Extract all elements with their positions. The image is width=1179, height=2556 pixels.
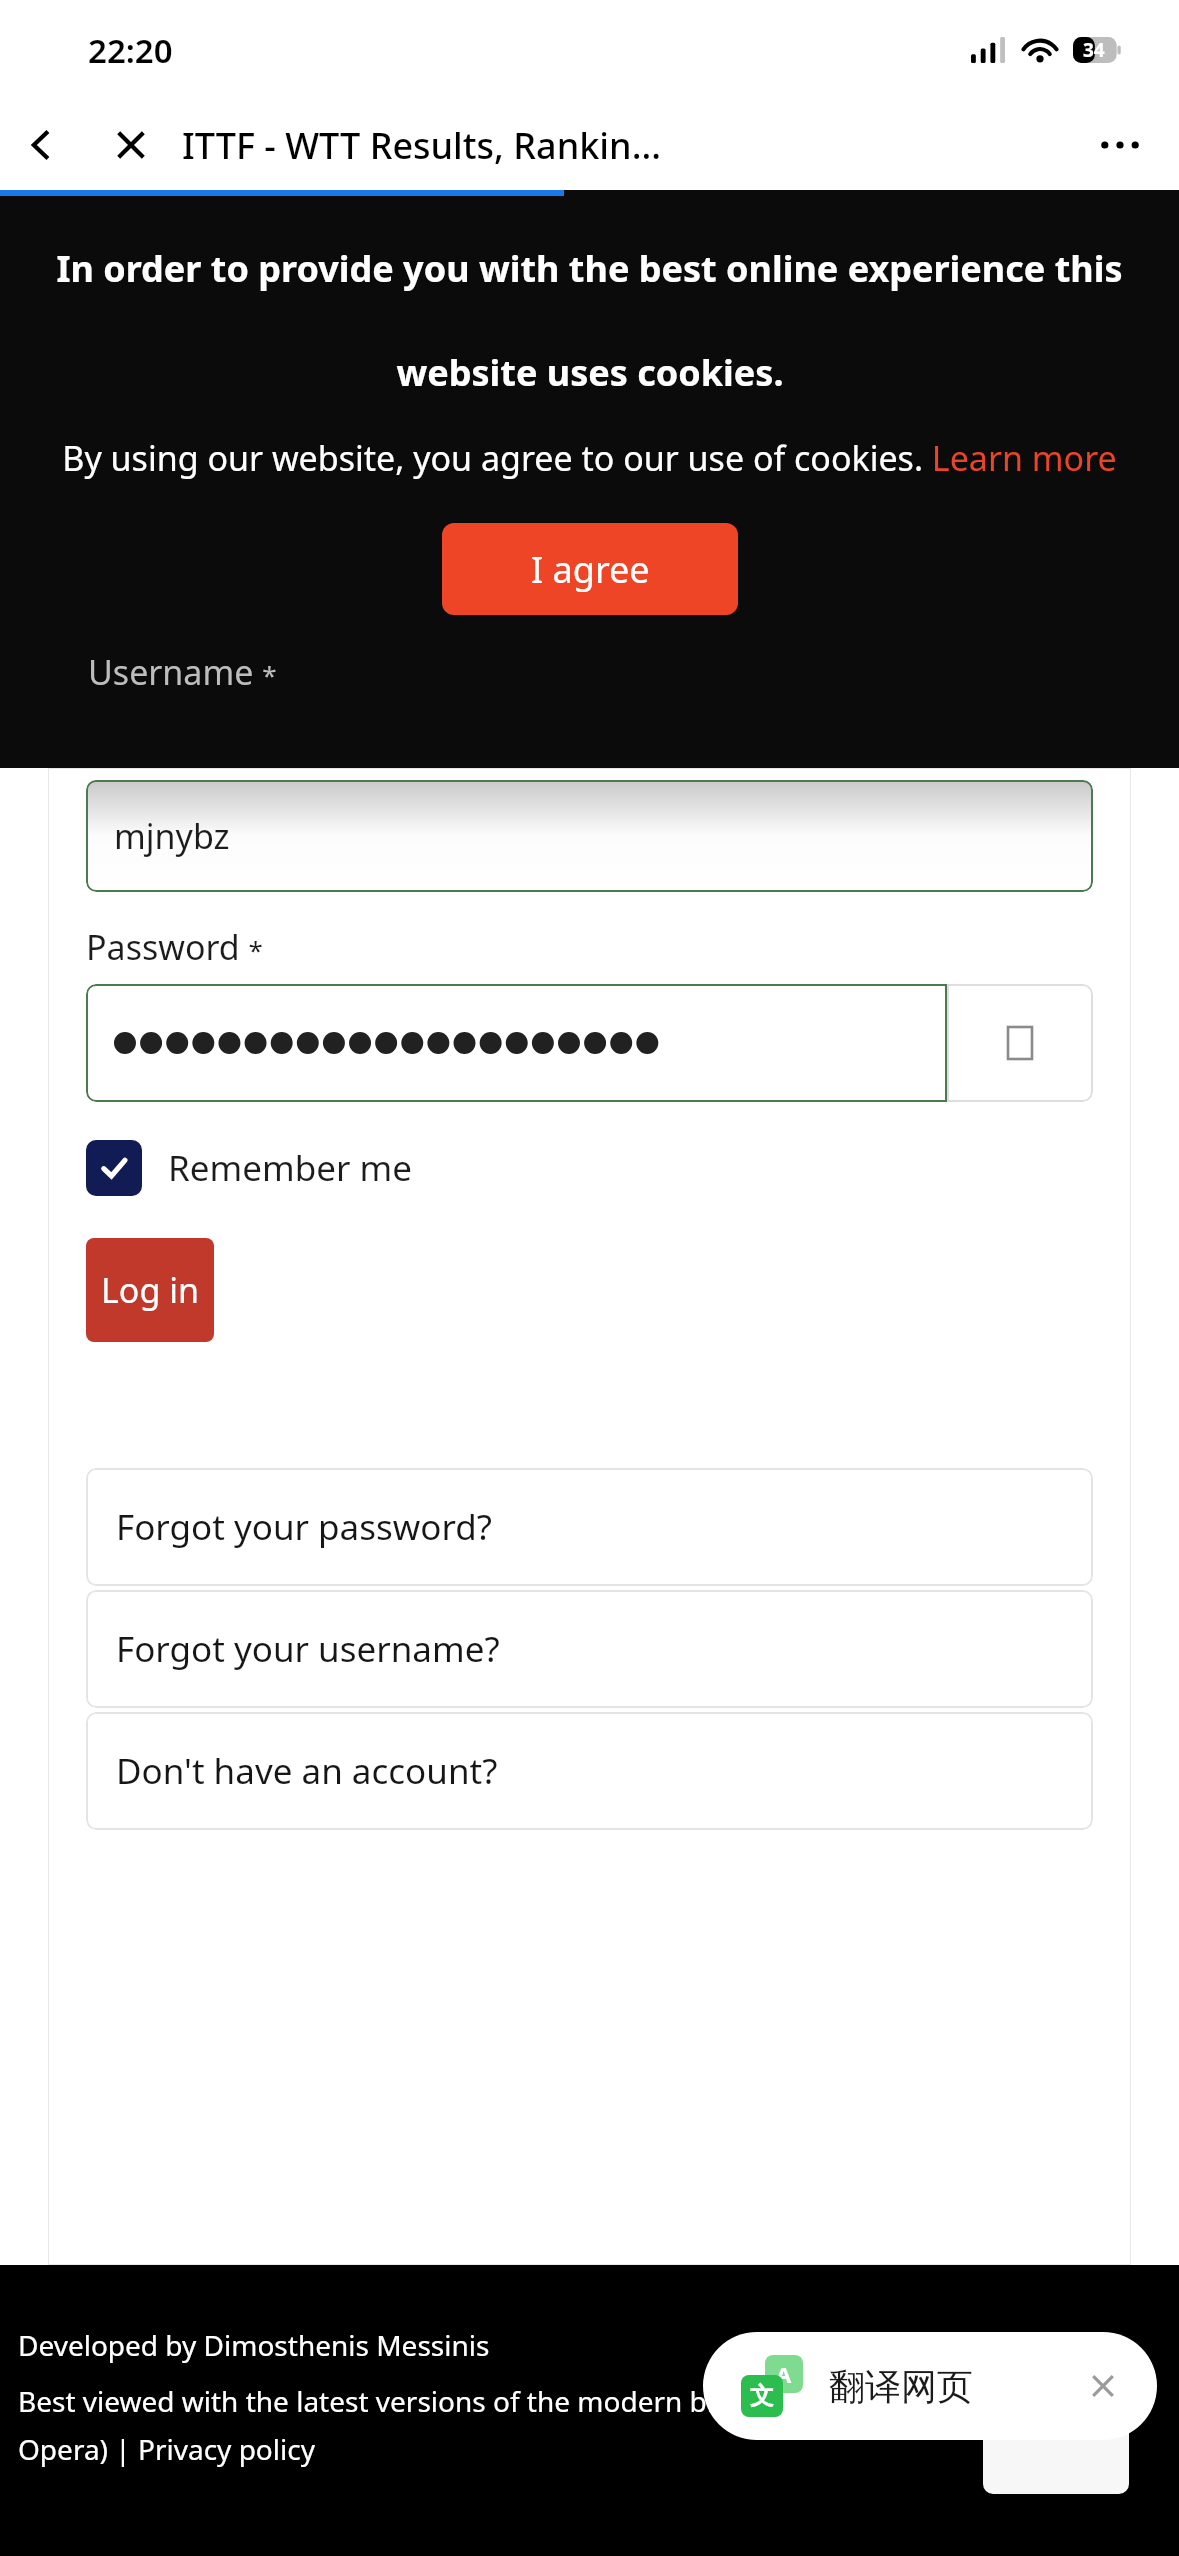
button[interactable]: Show password (983, 2374, 1129, 2494)
staticText: Best viewed with the latest versions of … (18, 2382, 1133, 2420)
staticText: A (776, 2359, 792, 2389)
button[interactable]: Log in (86, 1238, 214, 1342)
button[interactable]: Remember me (86, 1140, 412, 1196)
button[interactable]: Forgot your username? (86, 1590, 1093, 1708)
staticText: 34 (1083, 37, 1105, 63)
staticText: ITTF - WTT Results, Rankin... (182, 121, 662, 170)
button[interactable]: Don't have an account? (86, 1712, 1093, 1830)
staticText: By using our website, you agree to our u… (62, 435, 1117, 481)
staticText: Log in (101, 1267, 199, 1313)
staticText: mjnybz (114, 813, 230, 859)
button[interactable]: Show password (947, 984, 1093, 1102)
staticText: 翻译网页 (829, 2364, 973, 2409)
staticText: Forgot your username? (116, 1625, 500, 1673)
staticText: I agree (531, 545, 650, 594)
button[interactable]: Close translate prompt (1071, 2354, 1135, 2418)
button[interactable]: Forgot your password? (86, 1468, 1093, 1586)
button[interactable] (86, 984, 947, 1102)
staticText: 文 (750, 2381, 774, 2411)
staticText: Username * (88, 649, 277, 695)
button[interactable]: A (703, 2332, 1157, 2440)
staticText: Developed by Dimosthenis Messinis (18, 2326, 490, 2364)
button[interactable]: Close (100, 114, 162, 176)
button[interactable]: More options (1089, 114, 1151, 176)
staticText: Forgot your password? (116, 1503, 492, 1551)
button[interactable]: I agree (442, 523, 738, 615)
staticText: In order to provide you with the best on… (56, 244, 1123, 293)
staticText: website uses cookies. (396, 348, 784, 397)
staticText: Password * (86, 924, 263, 970)
staticText: Don't have an account? (116, 1747, 498, 1795)
staticText: Remember me (168, 1144, 412, 1192)
staticText: 22:20 (88, 28, 173, 73)
staticText: Opera) | Privacy policy (18, 2430, 315, 2468)
button[interactable]: Back (10, 114, 72, 176)
button[interactable]: mjnybz (86, 780, 1093, 892)
